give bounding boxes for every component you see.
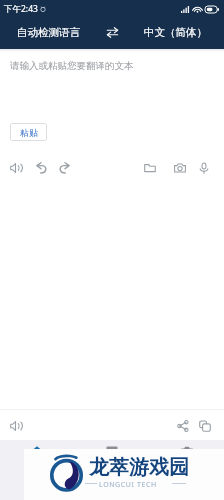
button[interactable]: Camera [169, 157, 191, 179]
staticText: 中文（简体） [144, 26, 207, 39]
button[interactable]: Listen [5, 157, 27, 179]
button[interactable]: Swap languages [97, 16, 127, 49]
button[interactable]: 粘贴 [10, 123, 47, 141]
staticText: 下午2:43 [4, 3, 38, 15]
button[interactable]: Share [172, 415, 194, 437]
button[interactable]: 自动检测语言 [0, 16, 97, 49]
staticText: LONGCUI TECH [99, 480, 157, 490]
button[interactable]: Undo [30, 157, 52, 179]
button[interactable]: 中文（简体） [127, 16, 224, 49]
button[interactable]: 请输入或粘贴您要翻译的文本 [0, 60, 224, 72]
button[interactable]: Translate [0, 440, 74, 500]
staticText: 粘贴 [20, 127, 38, 138]
staticText: 自动检测语言 [17, 26, 80, 39]
button[interactable]: Camera translate [149, 440, 224, 500]
button[interactable]: Conversation [74, 440, 149, 500]
button[interactable]: Copy [194, 415, 216, 437]
staticText: 龙萃游戏园 [89, 455, 189, 480]
button[interactable]: Listen to translation [5, 415, 27, 437]
button[interactable]: Documents [139, 157, 161, 179]
button[interactable]: Redo [54, 157, 76, 179]
button[interactable]: Microphone [193, 157, 215, 179]
staticText: 请输入或粘贴您要翻译的文本 [10, 60, 134, 72]
